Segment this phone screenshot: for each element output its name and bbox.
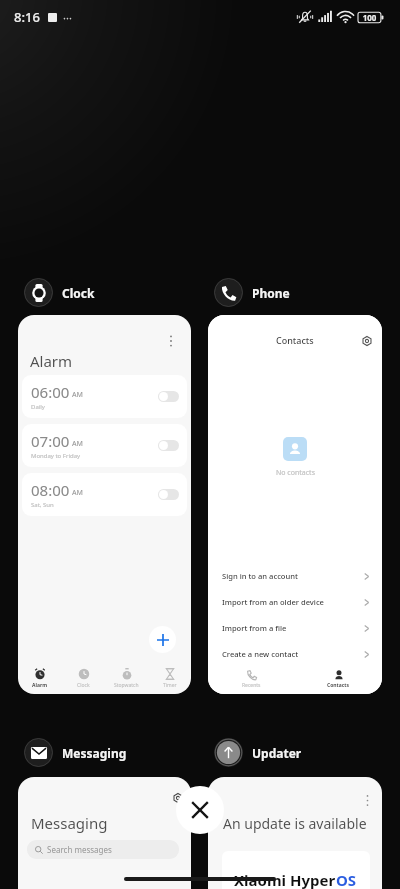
- button[interactable]: Create a new contact: [208, 641, 382, 667]
- staticText: Clock: [62, 285, 95, 301]
- button[interactable]: Clock: [62, 668, 105, 689]
- button[interactable]: Updater: [214, 738, 302, 767]
- button[interactable]: Close all: [176, 786, 224, 834]
- staticText: 07:00: [31, 431, 70, 451]
- staticText: AM: [72, 488, 84, 498]
- button[interactable]: Timer: [148, 668, 191, 689]
- staticText: Messaging: [62, 745, 127, 761]
- staticText: Daily: [31, 403, 45, 411]
- staticText: 06:00: [31, 382, 70, 402]
- staticText: Stopwatch: [114, 682, 139, 689]
- staticText: Create a new contact: [222, 649, 299, 659]
- staticText: ···: [63, 10, 72, 25]
- staticText: Messaging: [31, 813, 108, 833]
- button[interactable]: Import from a file: [208, 615, 382, 641]
- staticText: Alarm: [30, 351, 73, 371]
- button[interactable]: Settings: [172, 792, 184, 804]
- staticText: 08:00: [31, 480, 70, 500]
- button[interactable]: Clock: [24, 278, 95, 307]
- button[interactable]: Add alarm: [149, 626, 176, 653]
- button[interactable]: [158, 391, 179, 402]
- staticText: AM: [72, 439, 84, 449]
- staticText: 100: [358, 12, 381, 23]
- staticText: Import from a file: [222, 623, 287, 633]
- button[interactable]: [158, 489, 179, 500]
- staticText: Import from an older device: [222, 597, 324, 607]
- button[interactable]: Contacts: [295, 670, 382, 689]
- button[interactable]: More options: [208, 777, 382, 889]
- button[interactable]: Sign in to an account: [208, 563, 382, 589]
- button[interactable]: Settings: [18, 777, 191, 889]
- staticText: An update is available: [223, 814, 367, 833]
- button[interactable]: Search messages: [27, 840, 179, 859]
- staticText: Search messages: [47, 844, 112, 855]
- button[interactable]: 06:00: [22, 375, 187, 418]
- button[interactable]: Alarm: [18, 668, 62, 689]
- staticText: Contacts: [276, 334, 314, 346]
- staticText: 8:16: [14, 8, 40, 26]
- button[interactable]: More options: [360, 793, 374, 807]
- staticText: Xiaomi Hyper: [234, 870, 336, 889]
- button[interactable]: More options: [163, 333, 179, 349]
- staticText: Recents: [242, 682, 261, 689]
- button[interactable]: Import from an older device: [208, 589, 382, 615]
- button[interactable]: Recents: [208, 670, 295, 689]
- button[interactable]: Settings: [360, 334, 373, 347]
- staticText: Contacts: [327, 682, 350, 689]
- staticText: Alarm: [32, 682, 48, 689]
- staticText: AM: [72, 390, 84, 400]
- staticText: Updater: [252, 745, 302, 761]
- button[interactable]: 07:00: [22, 424, 187, 467]
- staticText: OS: [336, 870, 357, 889]
- staticText: Phone: [252, 285, 290, 301]
- staticText: Timer: [163, 682, 177, 689]
- staticText: Clock: [77, 682, 90, 689]
- staticText: Sign in to an account: [222, 571, 298, 581]
- staticText: Monday to Friday: [31, 452, 81, 460]
- button[interactable]: Stopwatch: [105, 668, 148, 689]
- button[interactable]: More options: [18, 315, 191, 694]
- button[interactable]: Messaging: [24, 738, 127, 767]
- button[interactable]: [158, 440, 179, 451]
- button[interactable]: 08:00: [22, 473, 187, 516]
- button[interactable]: Phone: [214, 278, 290, 307]
- staticText: No contacts: [276, 468, 315, 478]
- staticText: Sat, Sun: [31, 501, 54, 509]
- button[interactable]: Contacts: [208, 315, 382, 694]
